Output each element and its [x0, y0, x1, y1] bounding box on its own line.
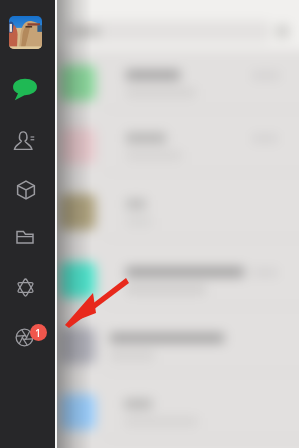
staticText: 1 [35, 325, 42, 340]
button[interactable]: Files [15, 227, 35, 247]
button[interactable]: Discover [15, 179, 37, 201]
button[interactable]: Chats [12, 75, 38, 101]
button[interactable]: Contacts [14, 131, 37, 154]
button[interactable]: Favorites [15, 277, 36, 298]
button[interactable]: Moments [15, 328, 34, 347]
button[interactable]: Profile [9, 16, 42, 49]
